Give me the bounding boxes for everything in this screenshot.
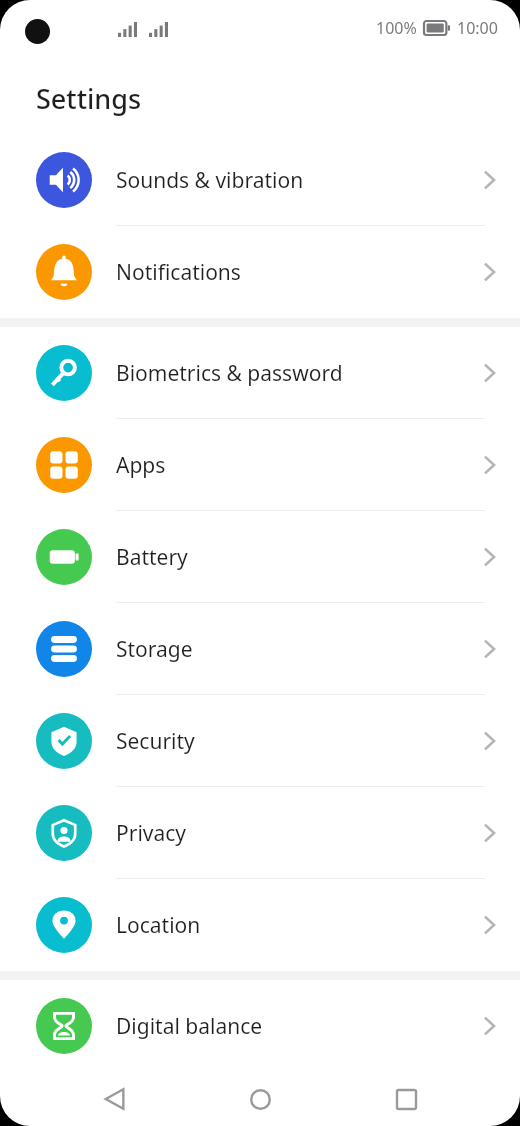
staticText: 100% [376, 17, 417, 39]
staticText: Notifications [116, 258, 241, 287]
staticText: Apps [116, 451, 166, 480]
button[interactable]: Biometrics & password [0, 327, 520, 419]
staticText: Storage [116, 635, 193, 664]
button[interactable]: Home [229, 1072, 291, 1126]
staticText: Location [116, 911, 201, 940]
staticText: Biometrics & password [116, 359, 343, 388]
button[interactable]: Storage [0, 603, 520, 695]
button[interactable]: Location [0, 879, 520, 971]
button[interactable]: Battery [0, 511, 520, 603]
button[interactable]: Privacy [0, 787, 520, 879]
staticText: Settings [36, 80, 142, 117]
button[interactable]: Back [84, 1072, 146, 1126]
staticText: Privacy [116, 819, 187, 848]
staticText: Digital balance [116, 1012, 263, 1041]
button[interactable]: Sounds & vibration [0, 134, 520, 226]
button[interactable]: Recent apps [375, 1072, 437, 1126]
staticText: 10:00 [457, 17, 498, 39]
button[interactable]: Digital balance [0, 980, 520, 1072]
button[interactable]: Apps [0, 419, 520, 511]
staticText: Battery [116, 543, 188, 572]
staticText: Sounds & vibration [116, 166, 304, 195]
staticText: Security [116, 727, 195, 756]
button[interactable]: Security [0, 695, 520, 787]
button[interactable]: Notifications [0, 226, 520, 318]
